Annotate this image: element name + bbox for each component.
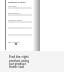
staticText: Company name — [8, 19, 23, 22]
staticText: Your message — [8, 33, 21, 36]
button[interactable]: Request a quote — [8, 1, 26, 4]
staticText: Email address — [8, 12, 21, 15]
button[interactable]: Send request — [8, 41, 20, 44]
button[interactable]: Full name — [8, 5, 17, 8]
staticText: Full name — [8, 5, 17, 8]
staticText: Find the right product using our product… — [9, 55, 34, 68]
button[interactable]: Your message — [8, 33, 21, 36]
button[interactable]: Find the right product using our product… — [9, 55, 34, 68]
staticText: Request a quote — [8, 1, 26, 4]
staticText: Phone number — [8, 26, 22, 29]
button[interactable]: Company name — [8, 19, 23, 22]
button[interactable]: Email address — [8, 12, 21, 15]
button[interactable]: Phone number — [8, 26, 22, 29]
staticText: Send request — [8, 41, 20, 44]
